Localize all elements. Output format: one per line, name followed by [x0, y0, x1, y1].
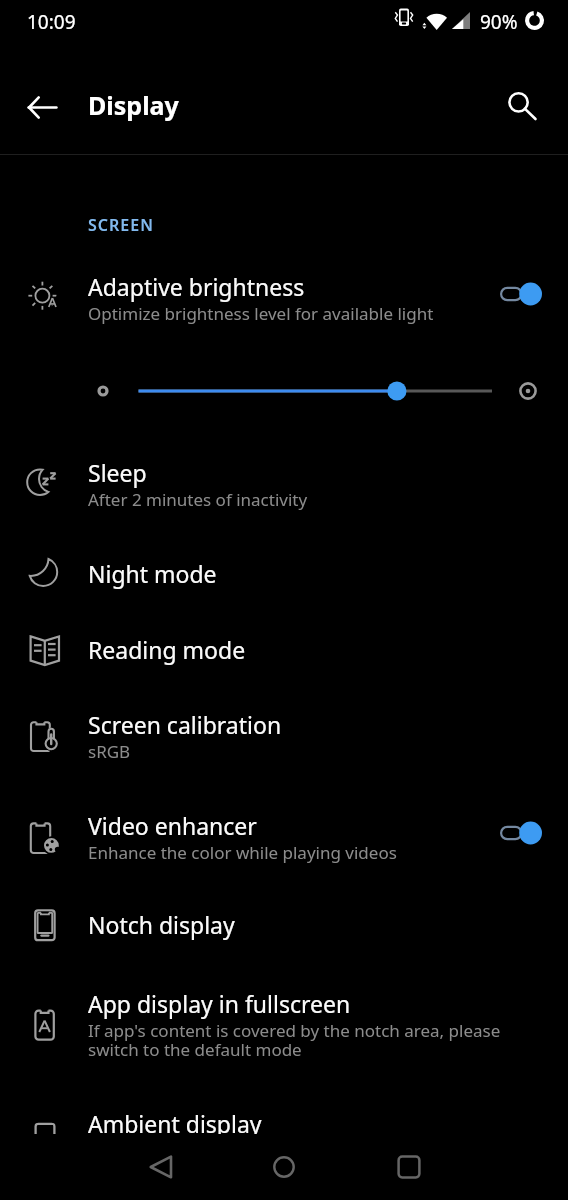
- staticText: sRGB: [88, 740, 131, 763]
- staticText: If app's content is covered by the notch…: [88, 1019, 501, 1042]
- staticText: Notch display: [88, 909, 235, 940]
- button[interactable]: Reading mode: [0, 620, 568, 679]
- staticText: Reading mode: [88, 634, 246, 665]
- button[interactable]: App display in fullscreen: [0, 974, 568, 1075]
- staticText: Optimize brightness level for available …: [88, 302, 434, 325]
- button[interactable]: Back: [14, 79, 70, 135]
- staticText: switch to the default mode: [88, 1038, 302, 1061]
- button[interactable]: Brightness level: [128, 371, 502, 411]
- button[interactable]: Night mode: [0, 544, 568, 603]
- staticText: Screen calibration: [88, 709, 282, 740]
- staticText: Display: [88, 88, 179, 122]
- button[interactable]: Back: [126, 1143, 198, 1191]
- staticText: 10:09: [27, 9, 76, 35]
- staticText: Adaptive brightness: [88, 271, 305, 302]
- button[interactable]: Home: [248, 1143, 320, 1191]
- staticText: Sleep: [88, 457, 147, 488]
- staticText: Enhance the color while playing videos: [88, 841, 397, 864]
- button[interactable]: Screen calibration: [0, 695, 568, 775]
- staticText: 90%: [480, 9, 518, 35]
- staticText: After 2 minutes of inactivity: [88, 488, 308, 511]
- button[interactable]: Adaptive brightness: [0, 257, 568, 337]
- button[interactable]: Video enhancer: [0, 796, 568, 876]
- button[interactable]: Notch display: [0, 895, 568, 954]
- button[interactable]: Toggle Video enhancer: [490, 811, 552, 855]
- staticText: Ambient display: [88, 1108, 262, 1139]
- staticText: App display in fullscreen: [88, 988, 351, 1019]
- button[interactable]: Sleep: [0, 443, 568, 523]
- staticText: Video enhancer: [88, 810, 257, 841]
- staticText: Night mode: [88, 558, 217, 589]
- button[interactable]: Search: [494, 79, 550, 135]
- button[interactable]: Toggle Adaptive brightness: [490, 272, 552, 316]
- button[interactable]: Ambient display: [0, 1094, 568, 1153]
- button[interactable]: Recent apps: [373, 1143, 445, 1191]
- staticText: SCREEN: [88, 214, 154, 236]
